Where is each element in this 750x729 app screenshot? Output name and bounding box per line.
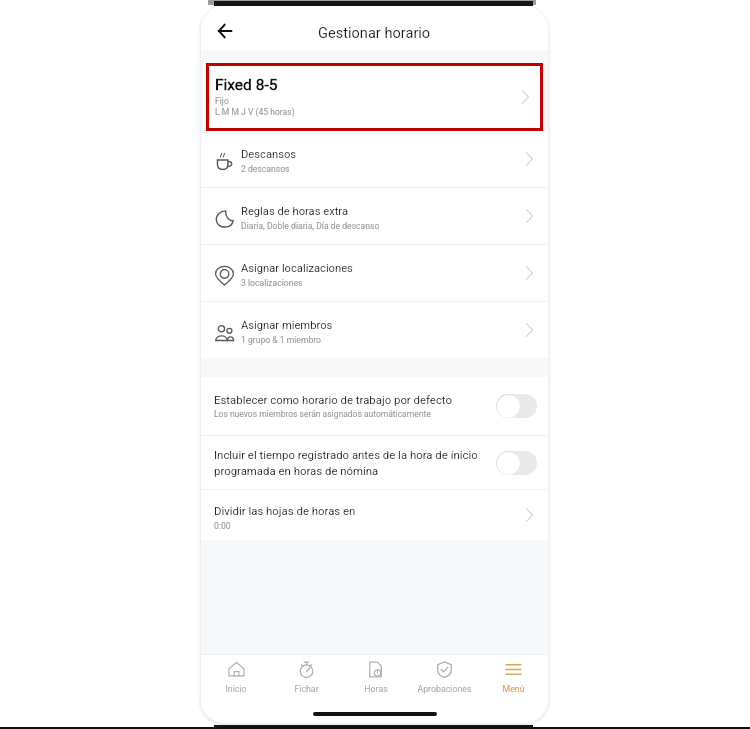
button[interactable]: Aprobaciones bbox=[410, 655, 479, 698]
staticText: Menú bbox=[502, 684, 525, 694]
staticText: Dividir las hojas de horas en bbox=[214, 504, 356, 517]
staticText: Asignar localizaciones bbox=[241, 262, 353, 275]
button[interactable]: Descansos bbox=[201, 131, 548, 187]
button[interactable]: Dividir las hojas de horas en bbox=[201, 490, 548, 540]
staticText: Los nuevos miembros serán asignados auto… bbox=[214, 409, 431, 419]
staticText: Inicio bbox=[225, 684, 247, 694]
button[interactable]: Establecer como horario de trabajo por d… bbox=[201, 377, 548, 435]
staticText: Asignar miembros bbox=[241, 319, 333, 332]
staticText: Reglas de horas extra bbox=[241, 205, 349, 218]
staticText: 1 grupo & 1 miembro bbox=[241, 335, 322, 345]
button[interactable]: Horas bbox=[341, 655, 410, 698]
staticText: 2 descansos bbox=[241, 164, 290, 174]
staticText: Establecer como horario de trabajo por d… bbox=[214, 393, 452, 406]
button[interactable]: Asignar localizaciones bbox=[201, 245, 548, 301]
button[interactable]: Back bbox=[208, 14, 242, 48]
button[interactable]: Asignar miembros bbox=[201, 302, 548, 358]
button[interactable]: Incluir el tiempo registrado antes de la… bbox=[201, 436, 548, 489]
button[interactable]: Establecer como horario de trabajo por d… bbox=[496, 394, 537, 418]
button[interactable]: Inicio bbox=[201, 655, 271, 698]
staticText: Fijo bbox=[215, 96, 229, 106]
staticText: Fichar bbox=[294, 684, 319, 694]
button[interactable]: Fichar bbox=[271, 655, 341, 698]
button[interactable]: Fixed 8-5 bbox=[206, 63, 543, 131]
button[interactable]: Reglas de horas extra bbox=[201, 188, 548, 244]
staticText: L M M J V (45 horas) bbox=[215, 107, 295, 117]
staticText: Diaria, Doble diaria, Día de descanso bbox=[241, 221, 380, 231]
staticText: Descansos bbox=[241, 148, 297, 161]
staticText: Incluir el tiempo registrado antes de la… bbox=[214, 448, 486, 478]
button[interactable]: Incluir el tiempo registrado antes de la… bbox=[496, 451, 537, 475]
staticText: Horas bbox=[364, 684, 388, 694]
staticText: Aprobaciones bbox=[417, 684, 472, 694]
staticText: Fixed 8-5 bbox=[215, 76, 278, 94]
staticText: 0:00 bbox=[214, 521, 231, 531]
staticText: 3 localizaciones bbox=[241, 278, 303, 288]
button[interactable]: Menú bbox=[479, 655, 548, 698]
staticText: Gestionar horario bbox=[318, 24, 431, 41]
